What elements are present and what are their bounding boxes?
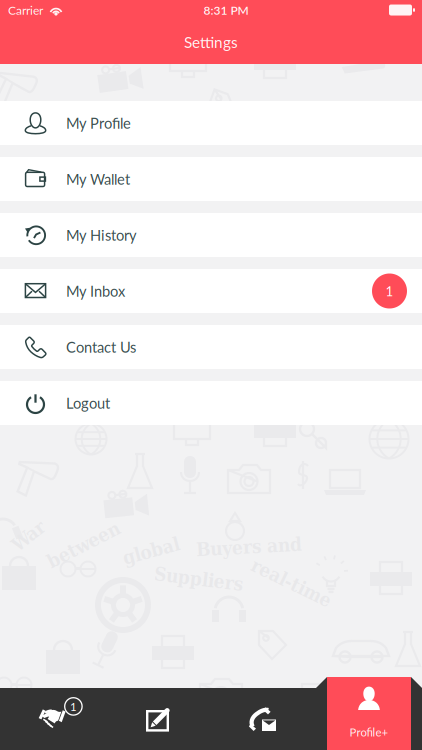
- staticText: War: [10, 525, 47, 547]
- staticText: Suppliers: [154, 568, 243, 590]
- staticText: My Inbox: [66, 282, 125, 300]
- button[interactable]: My Wallet: [0, 157, 422, 201]
- staticText: My Wallet: [66, 170, 130, 188]
- staticText: 1: [385, 283, 393, 299]
- staticText: real-time: [248, 572, 335, 594]
- button[interactable]: Profile+: [316, 677, 422, 750]
- staticText: 8:31 PM: [203, 3, 248, 17]
- staticText: Carrier: [8, 3, 43, 17]
- staticText: Logout: [66, 394, 110, 412]
- staticText: Buyers and: [196, 536, 302, 558]
- staticText: Profile+: [349, 725, 388, 739]
- button[interactable]: Contact Us: [0, 325, 422, 369]
- staticText: My History: [66, 226, 137, 244]
- staticText: global: [122, 540, 180, 562]
- button[interactable]: My Profile: [0, 101, 422, 145]
- button[interactable]: Deals: [0, 677, 105, 750]
- button[interactable]: Contacts: [210, 677, 316, 750]
- staticText: Contact Us: [66, 338, 136, 356]
- button[interactable]: Compose: [105, 677, 210, 750]
- button[interactable]: My Inbox: [0, 269, 422, 313]
- staticText: between: [44, 534, 123, 556]
- button[interactable]: My History: [0, 213, 422, 257]
- staticText: My Profile: [66, 114, 131, 132]
- button[interactable]: Logout: [0, 381, 422, 425]
- staticText: Settings: [184, 33, 238, 51]
- staticText: 1: [70, 700, 77, 713]
